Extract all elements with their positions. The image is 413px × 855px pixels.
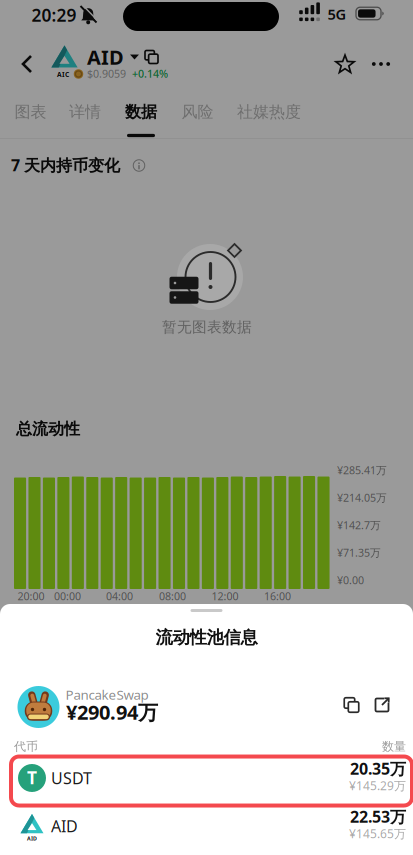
staticText: 5G [327, 4, 346, 24]
staticText: ¥214.05万 [337, 490, 387, 505]
button[interactable]: More [366, 51, 396, 77]
staticText: $0.9059 [87, 66, 126, 81]
button[interactable]: 风险 [181, 102, 213, 122]
staticText: ¥0.00 [337, 573, 364, 587]
staticText: 12:00 [211, 589, 238, 603]
button[interactable]: 图表 [14, 102, 46, 122]
staticText: 20:00 [17, 589, 44, 603]
button[interactable]: AID [87, 44, 139, 70]
staticText: PancakeSwap [65, 686, 148, 703]
staticText: 数量 [382, 739, 406, 754]
staticText: AID [87, 44, 124, 70]
staticText: AIC [57, 70, 69, 79]
staticText: ¥290.94万 [66, 699, 158, 725]
button[interactable]: PancakeSwap pool [0, 683, 330, 730]
staticText: T [27, 766, 37, 789]
staticText: 详情 [69, 102, 101, 122]
staticText: 08:00 [159, 589, 186, 603]
staticText: ¥142.7万 [337, 518, 381, 532]
staticText: 00:00 [54, 589, 81, 603]
staticText: 16:00 [264, 589, 291, 603]
staticText: USDT [51, 767, 92, 789]
button[interactable]: 数据 [125, 102, 157, 122]
button[interactable]: 社媒热度 [237, 102, 301, 122]
staticText: 04:00 [106, 589, 133, 603]
staticText: ¥71.35万 [337, 545, 381, 560]
staticText: AID [27, 835, 37, 842]
button[interactable]: Open in explorer [374, 697, 389, 712]
staticText: 总流动性 [16, 419, 80, 439]
staticText: 流动性池信息 [155, 627, 257, 648]
button[interactable]: Copy pool address [344, 698, 359, 712]
staticText: 数据 [125, 102, 157, 122]
staticText: AID [51, 815, 78, 837]
staticText: 22.53万 [350, 806, 406, 827]
staticText: 暂无图表数据 [162, 318, 252, 336]
staticText: 社媒热度 [237, 102, 301, 122]
staticText: ¥285.41万 [337, 463, 387, 477]
button[interactable]: Favorite [332, 50, 358, 78]
button[interactable]: 详情 [69, 102, 101, 122]
staticText: 风险 [181, 102, 213, 122]
staticText: 代币 [14, 739, 38, 754]
staticText: 7 天内持币变化 [11, 154, 120, 176]
staticText: 图表 [14, 102, 46, 122]
staticText: 20.35万 [350, 758, 406, 779]
staticText: +0.14% [132, 66, 168, 81]
button[interactable]: USDT [0, 754, 413, 802]
staticText: ¥145.65万 [349, 825, 406, 841]
staticText: ¥145.29万 [349, 777, 406, 793]
staticText: 20:29 [31, 3, 76, 26]
button[interactable]: Copy contract address [145, 50, 158, 63]
button[interactable]: Back [13, 50, 41, 78]
button[interactable]: AID [0, 804, 413, 852]
